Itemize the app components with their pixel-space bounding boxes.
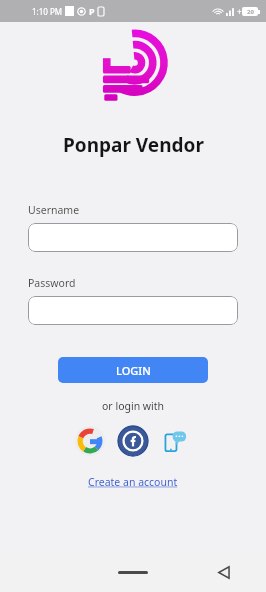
staticText: 1:10 PM <box>32 6 63 17</box>
staticText: Password <box>28 276 76 290</box>
button[interactable]: Sign in with Facebook <box>117 425 149 457</box>
button[interactable]: LOGIN <box>58 357 208 383</box>
button[interactable]: Username <box>28 223 238 252</box>
staticText: Ponpar Vendor <box>63 132 204 158</box>
button[interactable]: Back <box>210 558 238 586</box>
button[interactable]: Home <box>108 557 158 587</box>
staticText: or login with <box>102 399 165 413</box>
button[interactable]: Create an account <box>84 473 182 491</box>
staticText: P <box>89 5 95 17</box>
staticText: Create an account <box>88 475 178 489</box>
staticText: Username <box>28 203 80 217</box>
button[interactable]: Password <box>28 296 238 325</box>
staticText: 20 <box>247 8 254 16</box>
staticText: LOGIN <box>116 363 151 378</box>
button[interactable]: Sign in with Google <box>74 425 106 457</box>
staticText: + <box>237 6 242 17</box>
button[interactable]: Sign in with phone <box>160 425 192 457</box>
